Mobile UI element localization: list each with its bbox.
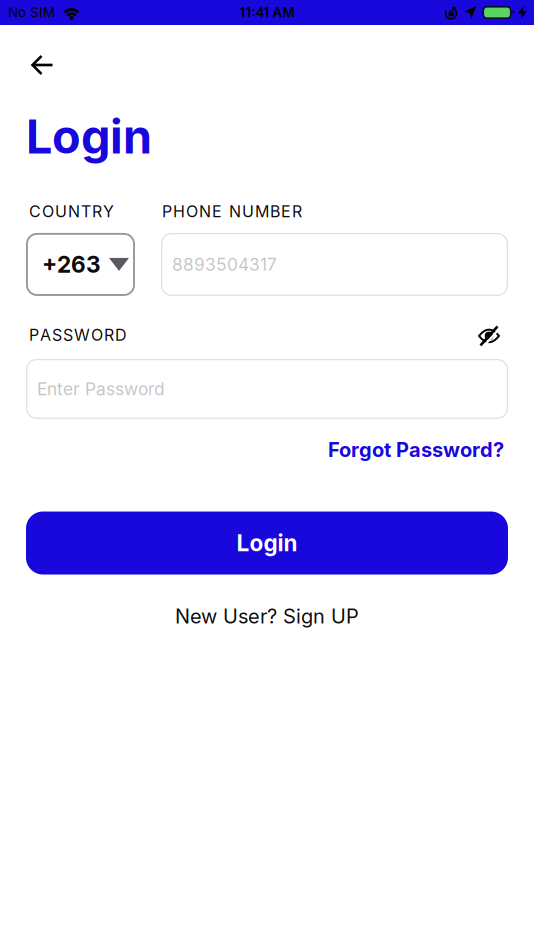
button[interactable]: Country code +263 — [26, 233, 135, 296]
staticText: 8893504317 — [172, 254, 277, 275]
button[interactable]: Back — [31, 55, 54, 75]
staticText: P H O N E N U M B E R — [162, 202, 302, 221]
staticText: Forgot Password? — [328, 438, 504, 461]
staticText: P A S S W O R D — [29, 325, 127, 344]
button[interactable]: Password — [26, 359, 508, 419]
button[interactable]: New User? Sign UP — [175, 604, 359, 628]
staticText: New User? Sign UP — [175, 604, 359, 628]
button[interactable]: Show password — [478, 326, 500, 346]
staticText: No SIM — [8, 5, 55, 20]
staticText: C O U N T R Y — [29, 202, 114, 221]
staticText: +263 — [42, 251, 101, 278]
staticText: Login — [236, 530, 297, 556]
button[interactable]: Login — [26, 511, 508, 574]
staticText: Login — [26, 109, 152, 164]
button[interactable]: Phone number — [161, 233, 508, 296]
button[interactable]: Forgot Password? — [328, 438, 504, 461]
staticText: 11:41 AM — [239, 5, 294, 20]
staticText: Enter Password — [37, 379, 165, 399]
